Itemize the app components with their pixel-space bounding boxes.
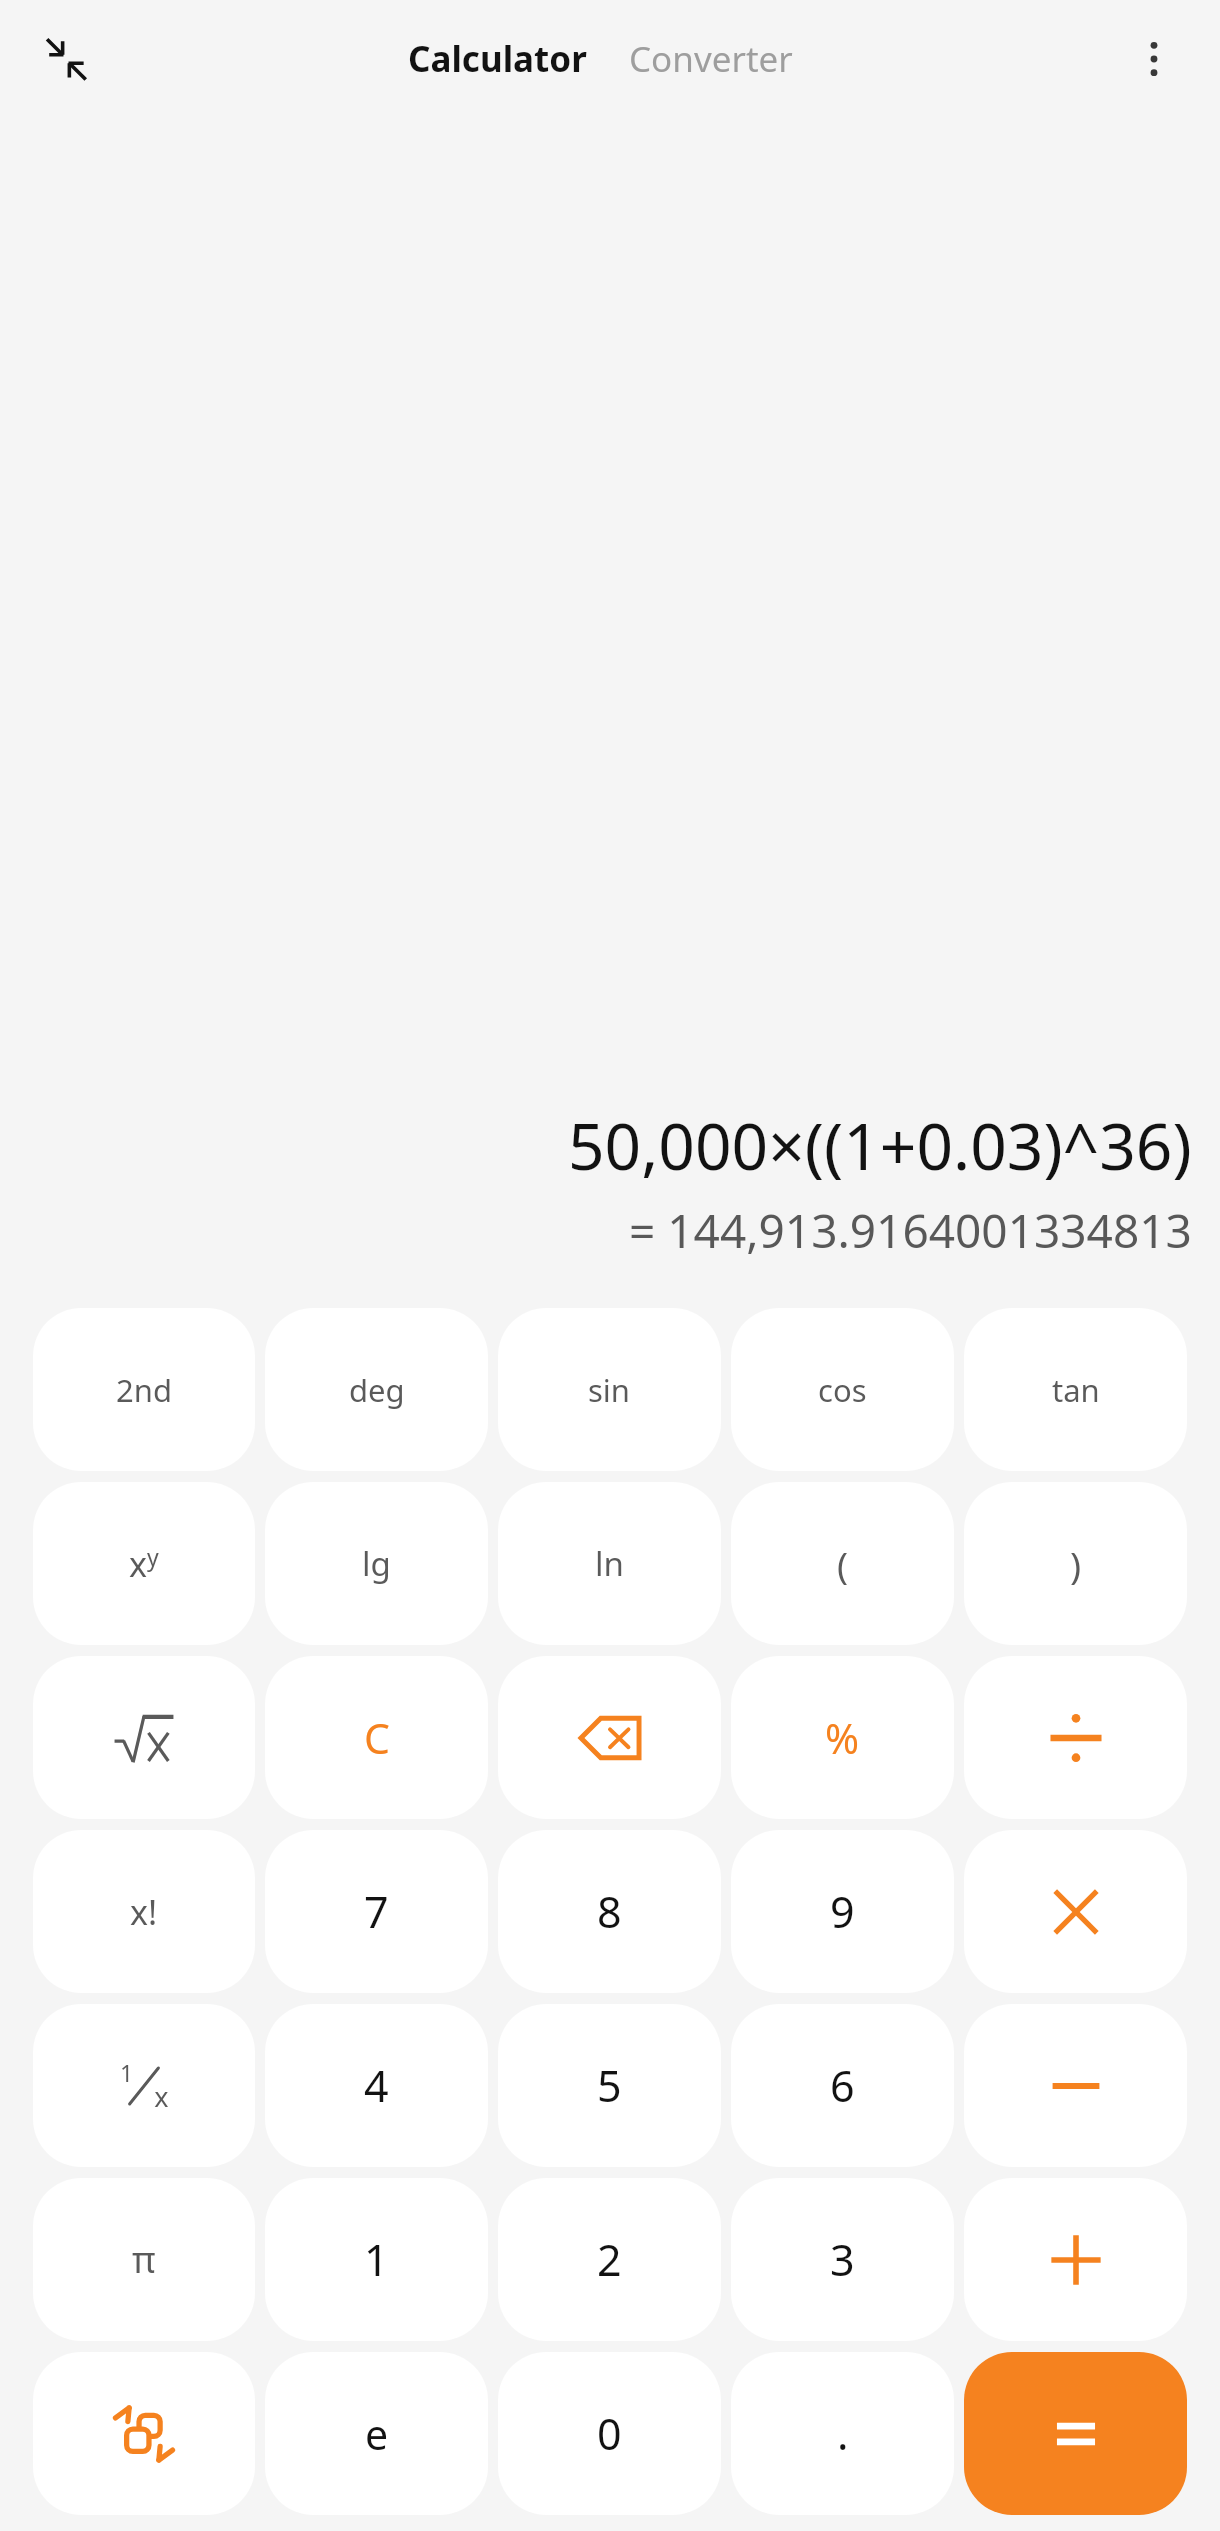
button[interactable]: e bbox=[265, 2352, 488, 2515]
button[interactable]: lg bbox=[265, 1482, 488, 1645]
button[interactable]: 9 bbox=[731, 1830, 954, 1993]
button[interactable]: Multi window bbox=[33, 2352, 255, 2515]
staticText: ) bbox=[1070, 1539, 1082, 1589]
staticText: 3 bbox=[830, 2230, 855, 2289]
staticText: 2 bbox=[597, 2230, 622, 2289]
staticText: π bbox=[132, 2235, 156, 2284]
button[interactable]: 0 bbox=[498, 2352, 721, 2515]
button[interactable]: . bbox=[731, 2352, 954, 2515]
button[interactable]: 1 x bbox=[33, 2004, 255, 2167]
staticText: C bbox=[364, 1710, 390, 1766]
button[interactable]: Plus bbox=[964, 2178, 1187, 2341]
button[interactable]: 2 bbox=[498, 2178, 721, 2341]
staticText: 50,000×((1+0.03)^36) bbox=[568, 1102, 1192, 1189]
button[interactable]: 4 bbox=[265, 2004, 488, 2167]
staticText: 1 x bbox=[120, 2057, 169, 2115]
staticText: 4 bbox=[364, 2056, 389, 2115]
staticText: 9 bbox=[830, 1882, 855, 1941]
button[interactable]: tan bbox=[964, 1308, 1187, 1471]
staticText: . bbox=[837, 2404, 849, 2463]
staticText: 7 bbox=[364, 1882, 389, 1941]
button[interactable]: ln bbox=[498, 1482, 721, 1645]
button[interactable]: 5 bbox=[498, 2004, 721, 2167]
staticText: xy bbox=[129, 1541, 159, 1587]
button[interactable]: % bbox=[731, 1656, 954, 1819]
staticText: 0 bbox=[597, 2404, 622, 2463]
button[interactable]: xy bbox=[33, 1482, 255, 1645]
button[interactable]: ( bbox=[731, 1482, 954, 1645]
button[interactable]: Divide bbox=[964, 1656, 1187, 1819]
button[interactable]: C bbox=[265, 1656, 488, 1819]
button[interactable]: ) bbox=[964, 1482, 1187, 1645]
staticText: Calculator bbox=[408, 35, 587, 83]
button[interactable]: More options bbox=[1116, 21, 1192, 97]
staticText: 5 bbox=[597, 2056, 622, 2115]
button[interactable]: Minimise bbox=[28, 21, 104, 97]
staticText: 6 bbox=[830, 2056, 855, 2115]
button[interactable]: 2nd bbox=[33, 1308, 255, 1471]
staticText: = 144,913.9164001334813 bbox=[629, 1199, 1192, 1262]
staticText: lg bbox=[362, 1541, 391, 1586]
staticText: 8 bbox=[597, 1882, 622, 1941]
button[interactable]: deg bbox=[265, 1308, 488, 1471]
button[interactable]: 3 bbox=[731, 2178, 954, 2341]
button[interactable]: cos bbox=[731, 1308, 954, 1471]
staticText: % bbox=[825, 1710, 860, 1766]
staticText: ln bbox=[595, 1541, 624, 1586]
button[interactable]: Backspace bbox=[498, 1656, 721, 1819]
button[interactable]: π bbox=[33, 2178, 255, 2341]
staticText: x! bbox=[130, 1889, 158, 1935]
button[interactable]: Calculator bbox=[396, 27, 599, 91]
button[interactable]: Minus bbox=[964, 2004, 1187, 2167]
staticText: tan bbox=[1052, 1369, 1100, 1411]
staticText: 2nd bbox=[116, 1369, 172, 1411]
staticText: e bbox=[365, 2406, 389, 2462]
button[interactable]: Converter bbox=[617, 27, 805, 91]
button[interactable]: sin bbox=[498, 1308, 721, 1471]
button[interactable]: 6 bbox=[731, 2004, 954, 2167]
staticText: deg bbox=[349, 1369, 405, 1411]
staticText: ( bbox=[837, 1539, 849, 1589]
staticText: 1 bbox=[364, 2230, 389, 2289]
button[interactable]: Multiply bbox=[964, 1830, 1187, 1993]
staticText: sin bbox=[588, 1369, 631, 1411]
button[interactable]: Equals bbox=[964, 2352, 1187, 2515]
button[interactable]: 7 bbox=[265, 1830, 488, 1993]
button[interactable]: x! bbox=[33, 1830, 255, 1993]
staticText: Converter bbox=[629, 35, 793, 83]
staticText: cos bbox=[818, 1369, 867, 1411]
button[interactable]: 1 bbox=[265, 2178, 488, 2341]
button[interactable]: Square root bbox=[33, 1656, 255, 1819]
button[interactable]: 8 bbox=[498, 1830, 721, 1993]
